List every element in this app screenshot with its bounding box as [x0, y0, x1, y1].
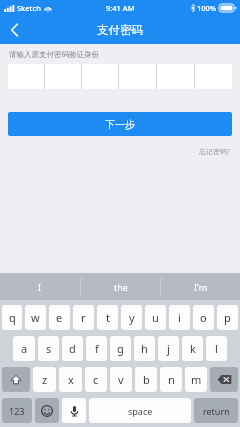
button[interactable]: f [86, 336, 107, 361]
staticText: 9:41 AM [106, 3, 135, 13]
staticText: m [191, 372, 202, 387]
staticText: 下一步 [105, 118, 135, 131]
staticText: the [114, 281, 128, 293]
button[interactable]: 123 [2, 398, 32, 423]
staticText: g [117, 341, 124, 356]
staticText: I'm [194, 281, 208, 293]
staticText: i [178, 310, 181, 325]
button[interactable]: h [134, 336, 155, 361]
button[interactable]: space [89, 398, 191, 423]
button[interactable]: 忘记密码? [199, 145, 240, 159]
staticText: f [95, 341, 99, 356]
button[interactable]: d [62, 336, 83, 361]
staticText: 123 [9, 405, 25, 417]
staticText: l [215, 341, 218, 356]
staticText: 请输入原支付密码验证身份 [9, 50, 99, 59]
staticText: e [56, 310, 63, 325]
staticText: x [68, 372, 74, 387]
button[interactable]: n [160, 367, 182, 392]
button[interactable]: p [217, 305, 238, 330]
button[interactable]: j [158, 336, 179, 361]
button[interactable]: return [194, 398, 238, 423]
button[interactable]: Backspace [210, 367, 238, 392]
button[interactable]: e [49, 305, 70, 330]
button[interactable]: x [59, 367, 82, 392]
button[interactable]: k [182, 336, 203, 361]
staticText: y [129, 310, 135, 325]
staticText: p [224, 310, 231, 325]
staticText: w [31, 310, 40, 325]
button[interactable]: v [110, 367, 132, 392]
button[interactable]: c [85, 367, 107, 392]
button[interactable]: b [135, 367, 157, 392]
staticText: c [93, 372, 99, 387]
button[interactable]: l [206, 336, 227, 361]
staticText: v [118, 372, 124, 387]
button[interactable]: a [13, 336, 35, 361]
staticText: q [9, 310, 16, 325]
button[interactable]: I'm [161, 273, 240, 300]
button[interactable]: Dictation [62, 398, 86, 423]
button[interactable]: o [193, 305, 214, 330]
staticText: j [167, 341, 170, 356]
staticText: s [46, 341, 52, 356]
button[interactable]: w [25, 305, 46, 330]
staticText: d [69, 341, 76, 356]
button[interactable]: t [97, 305, 118, 330]
button[interactable]: Shift [2, 367, 30, 392]
staticText: r [81, 310, 86, 325]
staticText: space [128, 405, 153, 417]
button[interactable]: 下一步 [8, 112, 232, 136]
staticText: I [38, 281, 42, 293]
staticText: return [203, 405, 230, 417]
button[interactable]: q [2, 305, 22, 330]
button[interactable]: Back [0, 16, 28, 44]
staticText: n [168, 372, 175, 387]
button[interactable]: g [110, 336, 131, 361]
staticText: 支付密码 [97, 23, 143, 37]
staticText: Sketch [17, 3, 41, 13]
staticText: a [21, 341, 28, 356]
staticText: z [42, 372, 48, 387]
staticText: u [152, 310, 159, 325]
staticText: t [106, 310, 110, 325]
button[interactable]: u [145, 305, 166, 330]
button[interactable]: r [73, 305, 94, 330]
button[interactable]: z [33, 367, 56, 392]
button[interactable]: y [121, 305, 142, 330]
staticText: h [141, 341, 148, 356]
staticText: 100% [197, 3, 217, 13]
button[interactable]: Emoji [35, 398, 59, 423]
staticText: b [143, 372, 150, 387]
button[interactable]: I [0, 273, 80, 300]
staticText: o [200, 310, 207, 325]
button[interactable]: s [38, 336, 59, 361]
staticText: k [190, 341, 196, 356]
button[interactable]: i [169, 305, 190, 330]
button[interactable]: m [185, 367, 207, 392]
button[interactable]: the [81, 273, 160, 300]
